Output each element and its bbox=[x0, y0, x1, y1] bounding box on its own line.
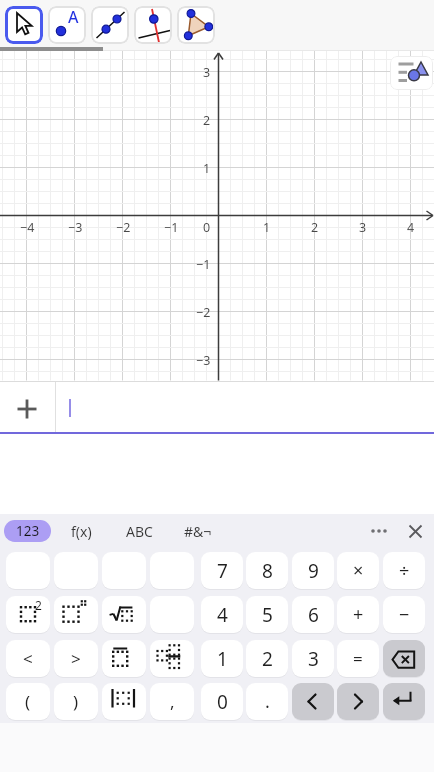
staticText: A bbox=[68, 6, 79, 28]
button[interactable] bbox=[102, 552, 146, 589]
staticText: 1 bbox=[263, 219, 271, 235]
button[interactable]: 8 bbox=[246, 552, 288, 589]
staticText: 2 bbox=[35, 597, 42, 613]
staticText: ( bbox=[25, 690, 31, 713]
staticText: − bbox=[399, 602, 410, 627]
staticText: 0 bbox=[203, 219, 211, 235]
button[interactable]: 1 bbox=[201, 640, 243, 677]
button[interactable]: ÷ bbox=[383, 552, 425, 589]
button[interactable] bbox=[366, 520, 392, 542]
staticText: 1 bbox=[203, 160, 211, 176]
staticText: > bbox=[71, 647, 81, 670]
staticText: −3 bbox=[68, 219, 83, 235]
button[interactable] bbox=[134, 6, 172, 44]
staticText: ÷ bbox=[399, 558, 410, 583]
button[interactable]: , bbox=[150, 683, 194, 720]
staticText: −4 bbox=[20, 219, 35, 235]
button[interactable]: ABC bbox=[117, 520, 162, 542]
button[interactable] bbox=[150, 552, 194, 589]
staticText: 1 bbox=[217, 646, 228, 672]
staticText: 4 bbox=[407, 219, 415, 235]
button[interactable] bbox=[54, 552, 98, 589]
staticText: 4 bbox=[217, 602, 228, 628]
button[interactable]: 9 bbox=[292, 552, 334, 589]
staticText: 3 bbox=[359, 219, 367, 235]
button[interactable]: 2 bbox=[246, 640, 288, 677]
staticText: −1 bbox=[164, 219, 179, 235]
button[interactable] bbox=[390, 56, 433, 90]
button[interactable] bbox=[383, 640, 425, 677]
staticText: = bbox=[353, 647, 363, 670]
button[interactable]: ) bbox=[54, 683, 98, 720]
button[interactable]: 123 bbox=[4, 520, 51, 542]
staticText: #&¬ bbox=[184, 522, 212, 541]
staticText: 0 bbox=[217, 689, 228, 715]
button[interactable]: f(x) bbox=[59, 520, 104, 542]
staticText: 2 bbox=[203, 112, 211, 128]
button[interactable]: ( bbox=[6, 683, 50, 720]
staticText: , bbox=[170, 690, 175, 713]
button[interactable]: 5 bbox=[246, 596, 288, 633]
button[interactable]: = bbox=[337, 640, 379, 677]
button[interactable] bbox=[292, 683, 334, 720]
staticText: −1 bbox=[196, 256, 211, 272]
staticText: ) bbox=[73, 690, 79, 713]
button[interactable]: 4 bbox=[201, 596, 243, 633]
button[interactable] bbox=[91, 6, 129, 44]
button[interactable] bbox=[150, 596, 194, 633]
staticText: 9 bbox=[308, 558, 319, 584]
staticText: 7 bbox=[217, 558, 228, 584]
button[interactable]: + bbox=[337, 596, 379, 633]
staticText: 8 bbox=[262, 558, 273, 584]
button[interactable]: × bbox=[337, 552, 379, 589]
staticText: 6 bbox=[308, 602, 319, 628]
staticText: 5 bbox=[262, 602, 273, 628]
staticText: 3 bbox=[308, 646, 319, 672]
staticText: 3 bbox=[203, 64, 211, 80]
button[interactable] bbox=[6, 552, 50, 589]
button[interactable] bbox=[102, 640, 146, 677]
button[interactable]: 6 bbox=[292, 596, 334, 633]
button[interactable] bbox=[150, 640, 194, 677]
button[interactable] bbox=[402, 520, 428, 542]
staticText: . bbox=[265, 689, 270, 714]
button[interactable] bbox=[8, 392, 46, 426]
staticText: −2 bbox=[196, 304, 211, 320]
button[interactable]: > bbox=[54, 640, 98, 677]
button[interactable]: 0 bbox=[201, 683, 243, 720]
button[interactable] bbox=[177, 6, 215, 44]
button[interactable]: 7 bbox=[201, 552, 243, 589]
button[interactable] bbox=[102, 596, 146, 633]
staticText: + bbox=[353, 602, 364, 627]
button[interactable] bbox=[48, 6, 86, 44]
button[interactable] bbox=[337, 683, 379, 720]
button[interactable]: #&¬ bbox=[175, 520, 220, 542]
button[interactable] bbox=[383, 683, 425, 720]
button[interactable]: . bbox=[246, 683, 288, 720]
staticText: f(x) bbox=[71, 522, 92, 541]
button[interactable]: − bbox=[383, 596, 425, 633]
staticText: ABC bbox=[126, 522, 153, 541]
staticText: −3 bbox=[196, 352, 211, 368]
staticText: −2 bbox=[116, 219, 131, 235]
button[interactable] bbox=[102, 683, 146, 720]
staticText: × bbox=[353, 558, 364, 583]
button[interactable]: 2 bbox=[6, 596, 50, 633]
staticText: 2 bbox=[311, 219, 319, 235]
staticText: 2 bbox=[262, 646, 273, 672]
button[interactable] bbox=[5, 6, 43, 44]
button[interactable] bbox=[54, 596, 98, 633]
button[interactable]: 3 bbox=[292, 640, 334, 677]
button[interactable]: < bbox=[6, 640, 50, 677]
staticText: 123 bbox=[16, 522, 40, 540]
staticText: < bbox=[23, 647, 33, 670]
